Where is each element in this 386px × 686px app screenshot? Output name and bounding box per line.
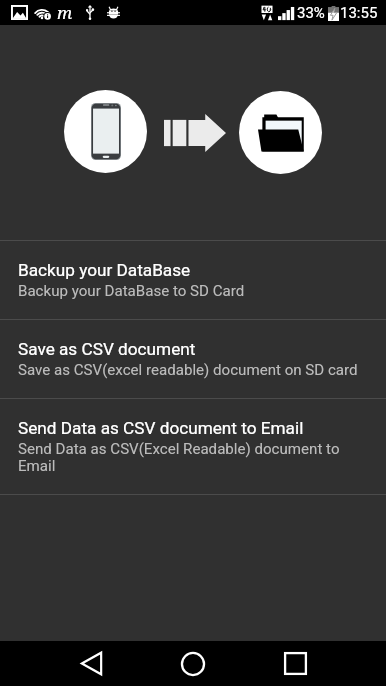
button[interactable]: Send Data as CSV document to Email (0, 399, 386, 494)
button[interactable]: Save as CSV document (0, 320, 386, 398)
staticText: 33% (297, 4, 325, 22)
staticText: Backup your DataBase to SD Card (18, 282, 360, 300)
staticText: Save as CSV(excel readable) document on … (18, 361, 360, 379)
staticText: Send Data as CSV(Excel Readable) documen… (18, 440, 360, 475)
button[interactable]: Recent apps (271, 641, 319, 686)
staticText: m (57, 1, 73, 24)
staticText: Backup your DataBase (18, 260, 191, 280)
button[interactable]: Back (67, 641, 115, 686)
staticText: 13:55 (340, 4, 378, 22)
staticText: Save as CSV document (18, 339, 196, 359)
staticText: Send Data as CSV document to Email (18, 418, 304, 438)
button[interactable]: Home (169, 641, 217, 686)
button[interactable]: Backup your DataBase (0, 241, 386, 319)
